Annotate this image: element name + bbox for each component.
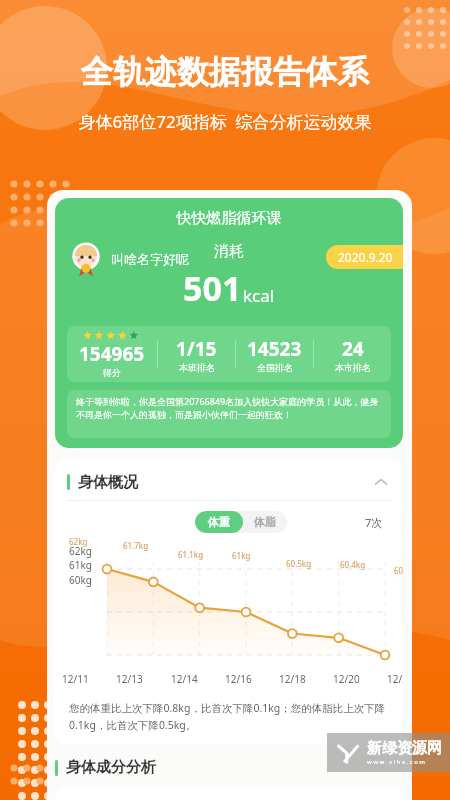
staticText: 12/16 — [225, 672, 252, 686]
button[interactable]: 154965 — [67, 331, 157, 378]
staticText: 您的体重比上次下降0.8kg，比首次下降0.1kg；您的体脂比上次下降0.1kg… — [69, 701, 389, 732]
staticText: 12/13 — [116, 672, 143, 686]
staticText: 61.7kg — [123, 540, 149, 551]
staticText: 全轨迹数据报告体系 — [0, 52, 450, 92]
staticText: 61kg — [69, 558, 92, 572]
staticText: 终于等到你啦，你是全国第20766849名加入快快大家庭的学员！从此，健身不再是… — [76, 395, 382, 420]
staticText: 24 — [342, 336, 364, 362]
staticText: 7次 — [365, 515, 383, 530]
staticText: 体脂 — [254, 515, 276, 529]
staticText: 快快燃脂循环课 — [55, 209, 403, 228]
staticText: kcal — [243, 284, 275, 307]
staticText: 全国排名 — [257, 362, 293, 373]
staticText: 身体概况 — [78, 473, 138, 492]
staticText: 体重 — [208, 515, 230, 529]
staticText: 12/20 — [333, 672, 360, 686]
staticText: 叫啥名字好呢 — [111, 251, 189, 267]
staticText: 154965 — [79, 341, 145, 367]
button[interactable]: 1/15 — [158, 336, 235, 373]
staticText: 60.4kg — [340, 559, 366, 570]
button[interactable]: 14523 — [236, 336, 313, 373]
staticText: 62kg — [69, 536, 88, 547]
staticText: 本班排名 — [179, 362, 215, 373]
staticText: 本市排名 — [335, 362, 371, 373]
staticText: 60kg — [394, 565, 403, 576]
staticText: 60.5kg — [286, 558, 312, 569]
staticText: 12/14 — [171, 672, 198, 686]
staticText: 身体成分分析 — [66, 758, 156, 777]
staticText: 身体6部位72项指标 综合分析运动效果 — [0, 110, 450, 133]
button[interactable]: 2020.9.20 — [338, 249, 393, 265]
staticText: 60kg — [69, 573, 92, 587]
staticText: 61kg — [232, 550, 251, 561]
staticText: 61.1kg — [178, 549, 204, 560]
staticText: 12/23 — [387, 672, 403, 686]
staticText: 12/18 — [279, 672, 306, 686]
staticText: w w w . x l h s . c o m — [367, 758, 425, 766]
staticText: 得分 — [103, 367, 121, 378]
button[interactable]: 24 — [314, 336, 391, 373]
staticText: 14523 — [247, 336, 302, 362]
staticText: 2020.9.20 — [338, 249, 393, 265]
staticText: 62kg — [69, 544, 92, 558]
staticText: 消耗 — [214, 242, 244, 261]
staticText: 1/15 — [176, 336, 217, 362]
button[interactable]: 体重 — [208, 515, 230, 529]
button[interactable]: Collapse — [371, 472, 391, 492]
staticText: 新绿资源网 — [367, 739, 442, 758]
staticText: 12/11 — [62, 672, 89, 686]
staticText: 501 — [183, 265, 242, 311]
button[interactable]: 体脂 — [254, 515, 276, 529]
